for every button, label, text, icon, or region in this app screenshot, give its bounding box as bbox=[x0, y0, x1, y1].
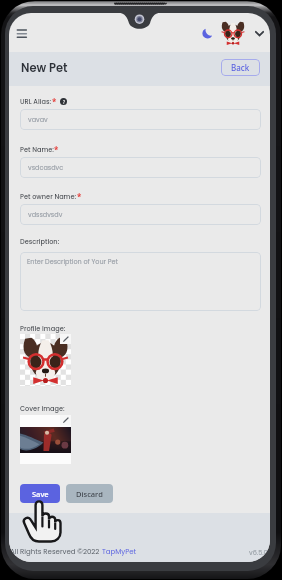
staticText: Discard bbox=[76, 489, 103, 499]
button[interactable]: vsdcasdvc bbox=[20, 157, 261, 178]
button[interactable]: Save bbox=[20, 484, 60, 503]
staticText: Pet owner Name: bbox=[20, 192, 77, 201]
staticText: New Pet bbox=[21, 60, 68, 76]
staticText: Cover image: bbox=[20, 404, 65, 413]
staticText: * bbox=[54, 144, 59, 155]
button[interactable]: vavav bbox=[20, 109, 261, 130]
button[interactable]: Discard bbox=[66, 484, 113, 503]
staticText: Description: bbox=[20, 237, 60, 246]
staticText: Enter Description of Your Pet bbox=[27, 257, 118, 266]
staticText: vavav bbox=[28, 115, 48, 124]
staticText: vdssdvsdv bbox=[28, 210, 63, 219]
button[interactable]: Account menu bbox=[251, 25, 267, 41]
staticText: * bbox=[52, 96, 57, 107]
button[interactable]: Profile image bbox=[20, 334, 71, 386]
staticText: ? bbox=[63, 99, 65, 105]
staticText: TapMyPet bbox=[102, 547, 137, 557]
staticText: URL Alias: bbox=[20, 97, 52, 106]
staticText: All Rights Reserved ©2022 bbox=[10, 547, 102, 557]
staticText: Back bbox=[231, 62, 250, 73]
staticText: v6.5.0 bbox=[249, 548, 268, 557]
button[interactable]: Enter Description of Your Pet bbox=[20, 252, 261, 311]
staticText: Pet Name: bbox=[20, 145, 54, 154]
button[interactable]: Menu bbox=[11, 22, 33, 44]
button[interactable]: Dark mode bbox=[199, 25, 215, 41]
staticText: vsdcasdvc bbox=[28, 163, 64, 172]
button[interactable]: Cover image bbox=[20, 427, 71, 453]
button[interactable]: Profile bbox=[20, 334, 71, 386]
button[interactable]: vdssdvsdv bbox=[20, 204, 261, 225]
staticText: Profile image: bbox=[20, 324, 66, 333]
button[interactable]: Edit image bbox=[60, 334, 71, 344]
staticText: Save bbox=[32, 489, 49, 499]
button[interactable]: Edit image bbox=[60, 415, 71, 425]
button[interactable]: Profile bbox=[220, 20, 246, 46]
button[interactable]: Back bbox=[221, 59, 260, 76]
staticText: * bbox=[77, 191, 82, 202]
